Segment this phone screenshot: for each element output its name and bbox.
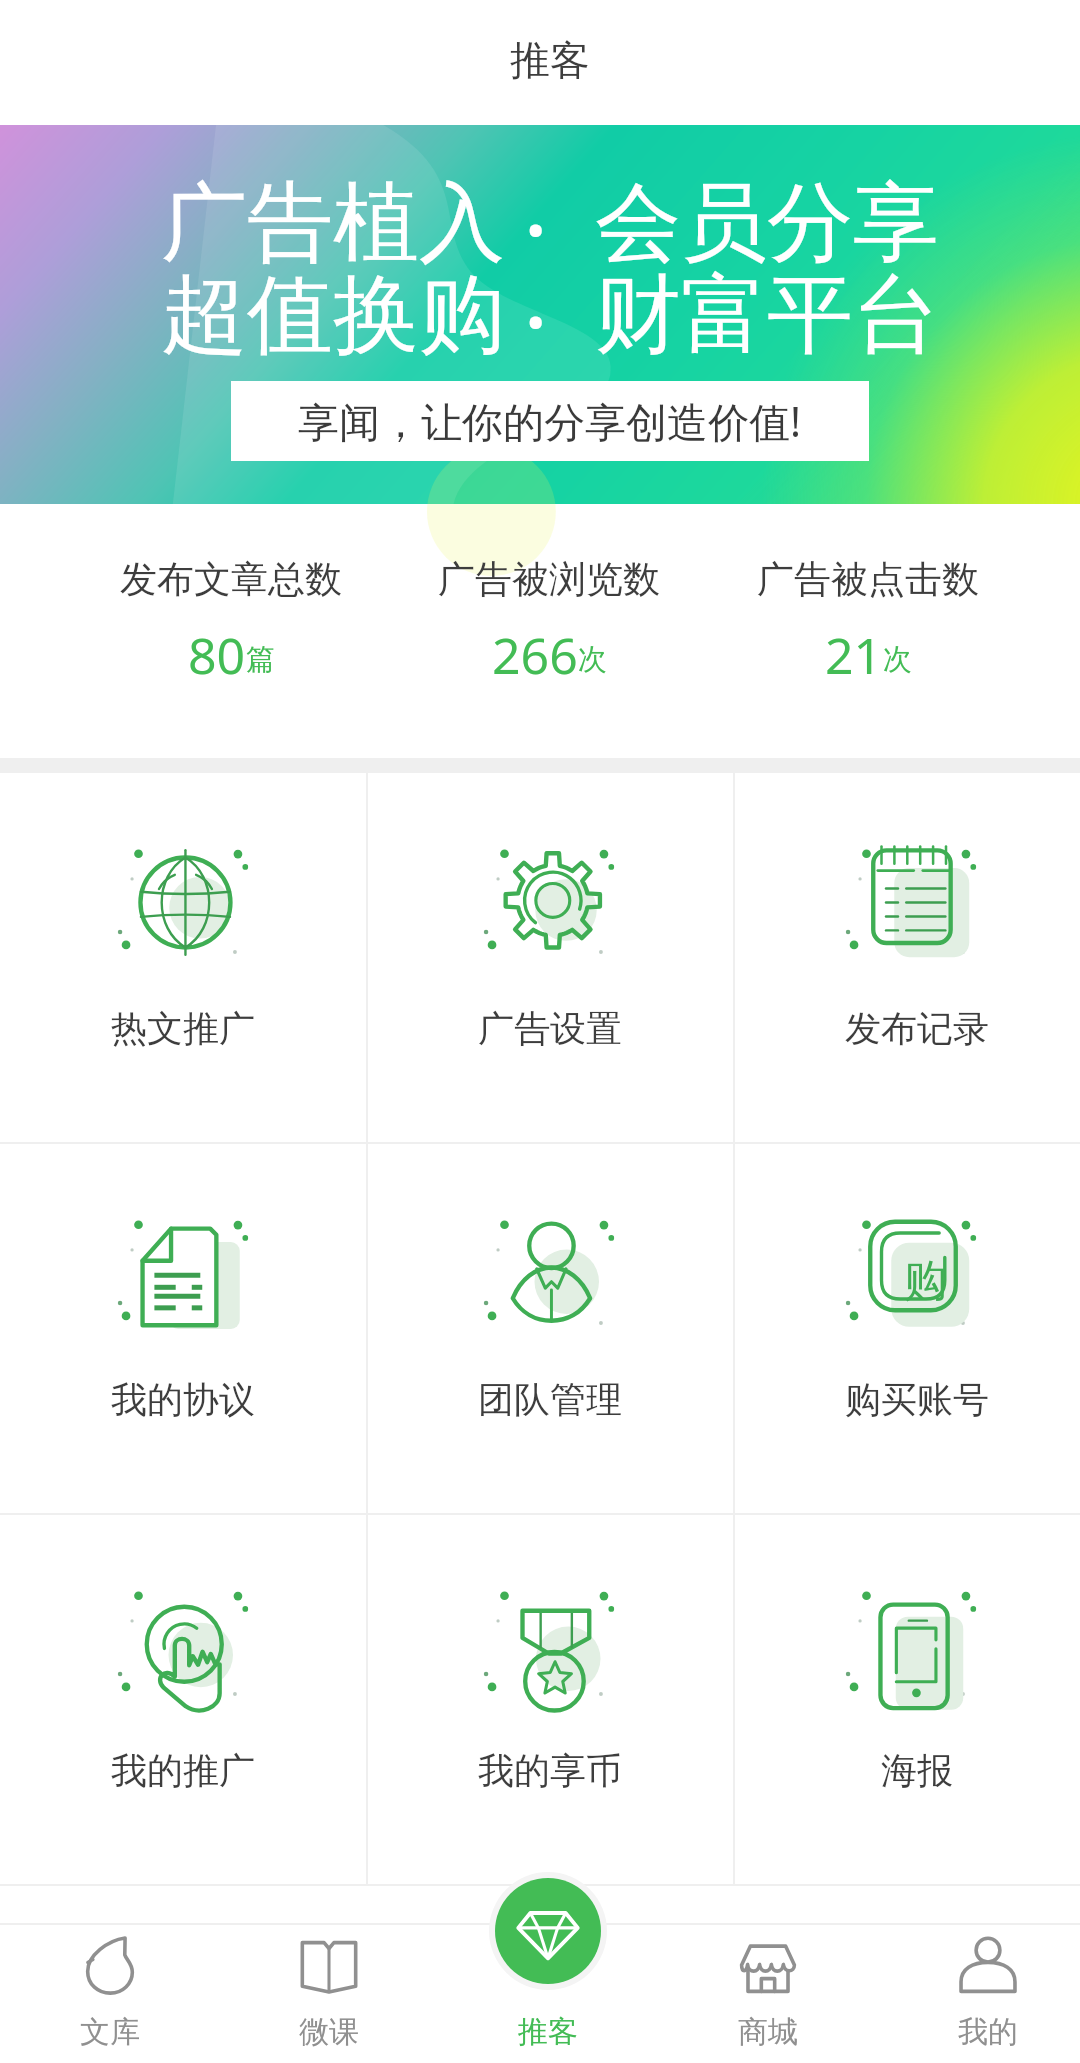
staticText: 广告设置	[478, 1006, 622, 1051]
staticText: 财富平台	[595, 261, 939, 369]
button[interactable]: 文库	[2, 1923, 218, 2063]
staticText: 团队管理	[478, 1377, 622, 1422]
staticText: 热文推广	[111, 1006, 255, 1051]
button[interactable]: 我的推广	[0, 1513, 366, 1884]
other: 微课	[300, 1936, 358, 1994]
staticText: ·	[524, 169, 548, 286]
button[interactable]: 海报	[734, 1513, 1080, 1884]
staticText: 推客	[518, 2013, 578, 2051]
staticText: ·	[524, 261, 548, 378]
staticText: 海报	[881, 1748, 953, 1793]
staticText: 广告被浏览数	[438, 556, 660, 603]
staticText: 发布文章总数	[120, 556, 342, 603]
staticText: 篇	[246, 641, 275, 678]
button[interactable]: 微课	[221, 1923, 437, 2063]
staticText: 266	[492, 621, 578, 681]
staticText: 超值换购	[161, 261, 505, 369]
staticText: 我的协议	[111, 1377, 255, 1422]
button[interactable]: 我的	[880, 1923, 1080, 2063]
staticText: 发布记录	[845, 1006, 989, 1051]
staticText: 80	[188, 621, 246, 681]
button[interactable]: 我的享币	[367, 1513, 733, 1884]
button[interactable]: 热文推广	[0, 771, 366, 1142]
staticText: 享闻，让你的分享创造价值!	[298, 393, 802, 449]
button[interactable]: 购	[734, 1142, 1080, 1513]
other: 商城	[739, 1936, 797, 1994]
staticText: 购买账号	[845, 1377, 989, 1422]
staticText: 会员分享	[595, 169, 939, 277]
staticText: 文库	[80, 2013, 140, 2051]
staticText: 我的享币	[478, 1748, 622, 1793]
staticText: 21	[825, 621, 883, 681]
staticText: 微课	[299, 2013, 359, 2051]
staticText: 次	[578, 641, 607, 678]
button[interactable]: 发布记录	[734, 771, 1080, 1142]
button[interactable]: 我的协议	[0, 1142, 366, 1513]
staticText: 我的推广	[111, 1748, 255, 1793]
other: 我的	[959, 1936, 1017, 1994]
staticText: 广告植入	[161, 169, 505, 277]
staticText: 我的	[958, 2013, 1018, 2051]
staticText: 商城	[738, 2013, 798, 2051]
staticText: 购	[904, 1254, 947, 1308]
staticText: 次	[883, 641, 912, 678]
staticText: 广告被点击数	[757, 556, 979, 603]
button[interactable]: 广告设置	[367, 771, 733, 1142]
staticText: 推客	[510, 35, 590, 85]
button[interactable]: 商城	[660, 1923, 876, 2063]
button[interactable]: 团队管理	[367, 1142, 733, 1513]
button[interactable]: 推客	[440, 1866, 656, 2063]
other: 文库	[81, 1936, 139, 1994]
